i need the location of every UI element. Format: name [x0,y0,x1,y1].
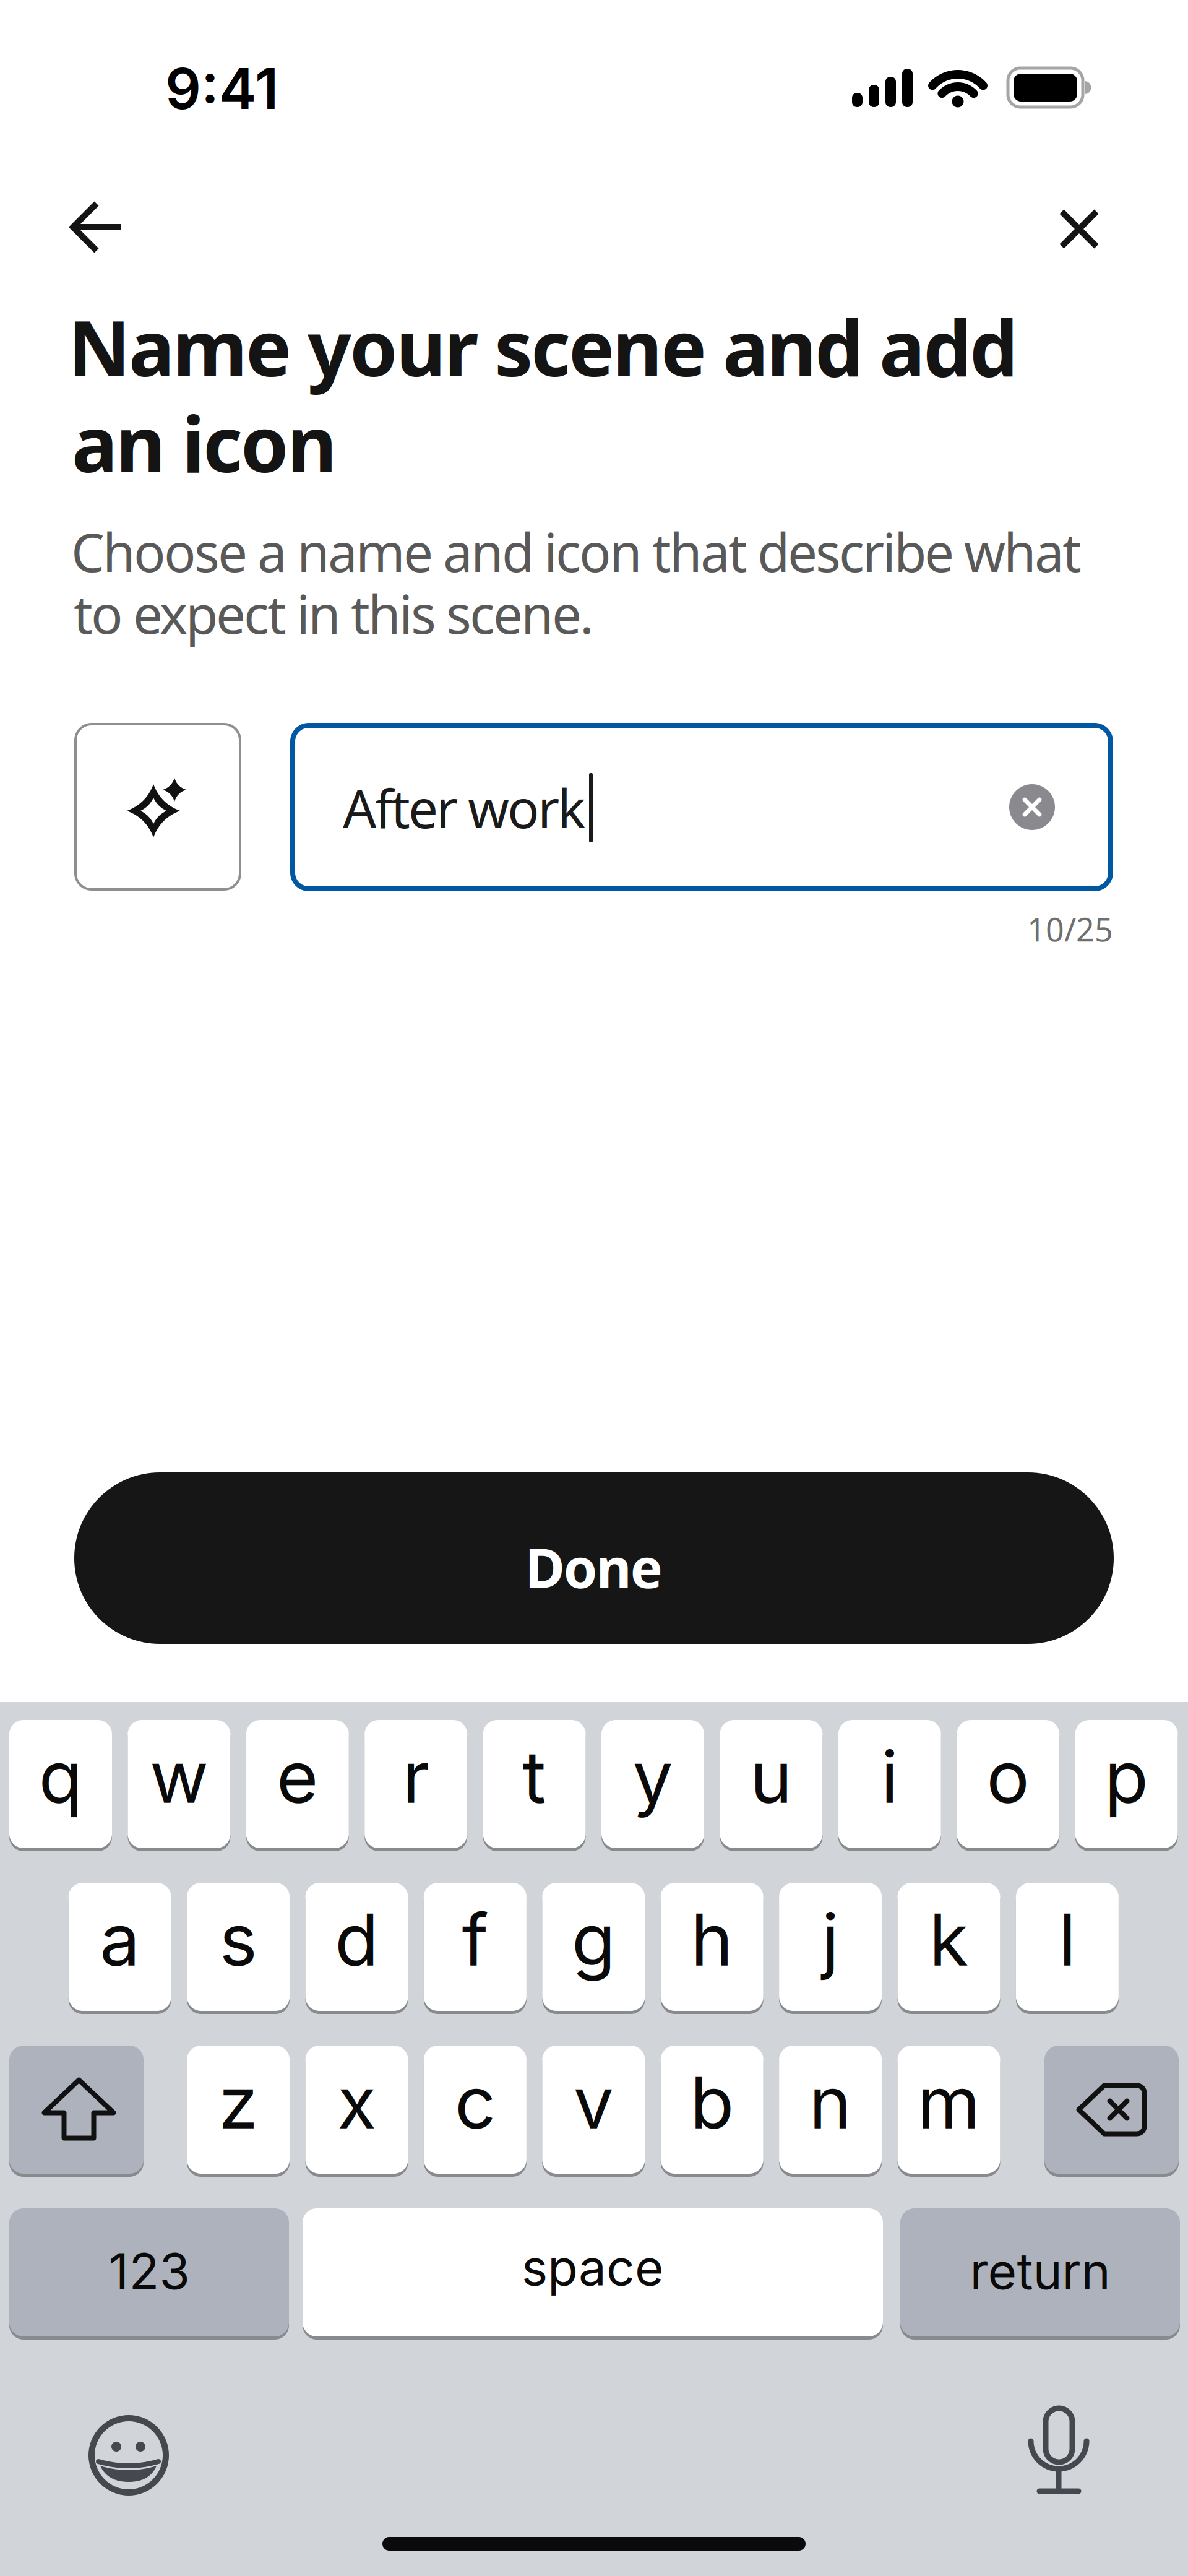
staticText: e [276,1733,319,1820]
staticText: j [822,1896,839,1983]
staticText: z [218,2059,258,2146]
button[interactable]: i [838,1719,941,1849]
button[interactable]: k [897,1882,1000,2012]
button[interactable]: f [424,1882,526,2012]
button[interactable]: Clear text [1009,784,1055,830]
button[interactable]: Scene name, After work [290,723,1113,891]
staticText: Name your scene and add [68,296,1018,398]
button[interactable]: q [9,1719,112,1849]
button[interactable]: Back [70,201,124,254]
button[interactable]: Dictation [1025,2406,1093,2499]
button[interactable]: s [187,1882,290,2012]
staticText: p [1105,1733,1148,1820]
button[interactable]: b [661,2044,763,2175]
staticText: return [970,2241,1110,2301]
staticText: Choose a name and icon that describe wha… [71,516,1082,587]
button[interactable]: Done [74,1472,1114,1644]
staticText: n [809,2059,852,2146]
staticText: d [335,1896,379,1983]
button[interactable]: w [128,1719,230,1849]
staticText: r [402,1733,430,1820]
staticText: g [572,1896,616,1983]
button[interactable]: z [187,2044,290,2175]
button[interactable]: u [720,1719,823,1849]
button[interactable]: h [661,1882,763,2012]
button[interactable]: x [305,2044,408,2175]
staticText: q [39,1733,83,1820]
staticText: After work [343,773,586,843]
staticText: space [522,2238,664,2297]
staticText: t [523,1733,546,1820]
button[interactable]: r [365,1719,467,1849]
button[interactable]: Delete [1044,2044,1179,2175]
button[interactable]: c [424,2044,526,2175]
staticText: l [1059,1896,1076,1983]
staticText: c [455,2059,496,2146]
staticText: 9:41 [165,55,278,122]
staticText: h [691,1896,733,1983]
button[interactable]: m [897,2044,1000,2175]
button[interactable]: g [542,1882,645,2012]
button[interactable]: e [246,1719,349,1849]
staticText: w [150,1733,208,1820]
staticText: i [881,1733,898,1820]
staticText: 123 [109,2241,190,2301]
button[interactable]: space [303,2207,883,2338]
button[interactable]: Numbers [9,2207,289,2338]
staticText: b [690,2059,734,2146]
button[interactable]: Scene icon [74,723,241,891]
staticText: to expect in this scene. [74,578,594,648]
button[interactable]: Close [1059,209,1100,249]
staticText: a [100,1896,140,1983]
staticText: u [750,1733,793,1820]
button[interactable]: l [1016,1882,1119,2012]
button[interactable]: n [779,2044,882,2175]
staticText: o [986,1733,1030,1820]
button[interactable]: p [1075,1719,1178,1849]
staticText: s [219,1896,257,1983]
staticText: Done [525,1531,663,1603]
button[interactable]: Emoji [85,2412,172,2499]
button[interactable]: v [542,2044,645,2175]
staticText: an icon [72,392,337,494]
button[interactable]: y [601,1719,704,1849]
staticText: v [573,2059,614,2146]
button[interactable]: j [779,1882,882,2012]
staticText: y [633,1733,673,1820]
button[interactable]: o [957,1719,1059,1849]
button[interactable]: d [305,1882,408,2012]
button[interactable]: t [483,1719,586,1849]
staticText: m [917,2059,980,2146]
button[interactable]: return [900,2207,1180,2338]
staticText: 10/25 [1027,908,1113,950]
staticText: x [337,2059,376,2146]
button[interactable]: Shift [9,2044,144,2175]
staticText: f [462,1896,488,1983]
button[interactable]: a [68,1882,171,2012]
staticText: k [929,1896,969,1983]
